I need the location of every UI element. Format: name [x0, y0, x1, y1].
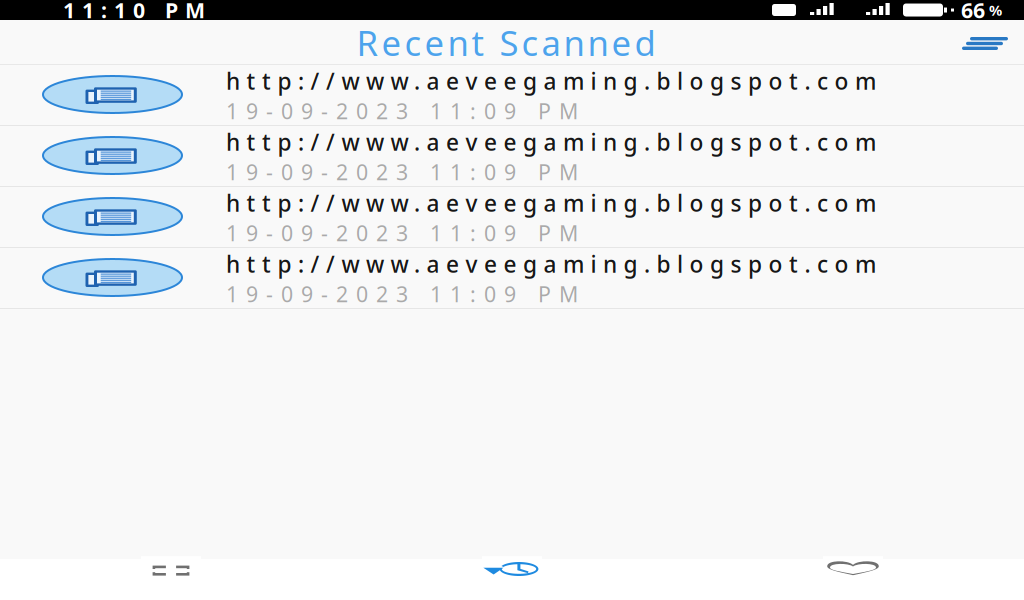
button[interactable]: http://www.aeveegaming.blogspot.com	[0, 126, 1024, 187]
staticText: 19-09-2023 11:09 PM	[226, 158, 592, 186]
staticText: http://www.aeveegaming.blogspot.com	[226, 249, 888, 279]
staticText: 66	[961, 0, 985, 24]
button[interactable]: Sort	[950, 20, 1024, 65]
staticText: Recent Scanned	[356, 19, 667, 65]
staticText: 19-09-2023 11:09 PM	[226, 280, 592, 308]
button[interactable]: History	[341, 559, 682, 600]
button[interactable]: http://www.aeveegaming.blogspot.com	[0, 248, 1024, 309]
staticText: 19-09-2023 11:09 PM	[226, 97, 592, 125]
button[interactable]: http://www.aeveegaming.blogspot.com	[0, 187, 1024, 248]
staticText: 19-09-2023 11:09 PM	[226, 219, 592, 247]
button[interactable]: Save	[682, 559, 1023, 600]
staticText: %	[989, 0, 1002, 20]
button[interactable]: Scan	[0, 559, 341, 600]
button[interactable]: http://www.aeveegaming.blogspot.com	[0, 65, 1024, 126]
staticText: 11:10 PM	[63, 0, 218, 24]
staticText: http://www.aeveegaming.blogspot.com	[226, 66, 888, 96]
staticText: http://www.aeveegaming.blogspot.com	[226, 188, 888, 218]
staticText: http://www.aeveegaming.blogspot.com	[226, 127, 888, 157]
